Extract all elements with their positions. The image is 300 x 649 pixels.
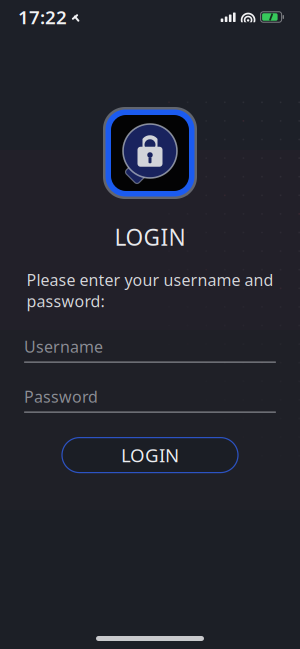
staticText: Please enter your username and password: [26,269,273,312]
staticText: LOGIN [121,443,179,467]
button[interactable]: LOGIN [62,438,238,473]
staticText: Username [24,336,103,357]
staticText: 17:22 [18,5,67,29]
staticText: LOGIN [114,222,185,252]
staticText: Password [24,386,98,407]
